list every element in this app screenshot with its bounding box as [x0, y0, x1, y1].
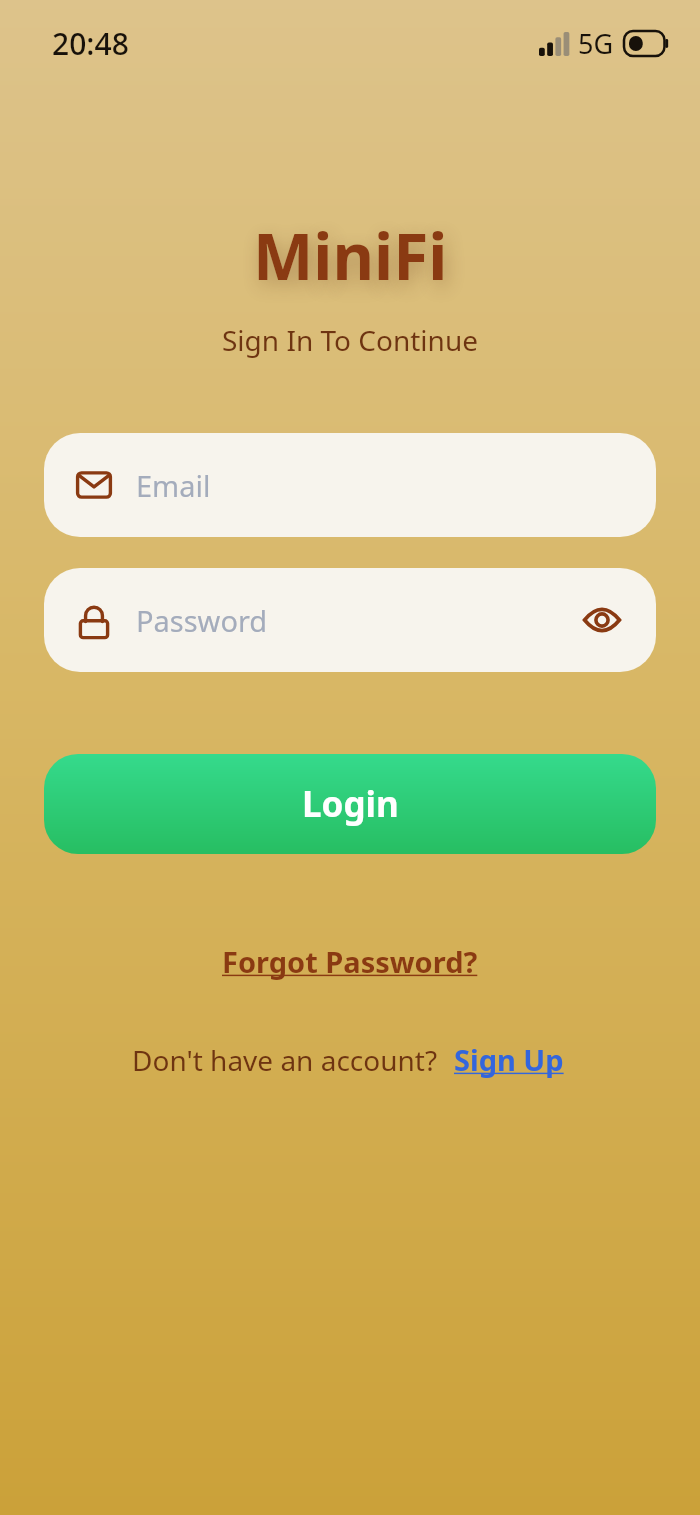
button[interactable]: Password [44, 568, 656, 672]
button[interactable]: Login [44, 754, 656, 854]
staticText: 5G [578, 25, 614, 62]
button[interactable]: Sign Up [450, 1035, 568, 1084]
staticText: Don't have an account? [132, 1041, 438, 1079]
staticText: Email [136, 466, 211, 505]
staticText: Sign In To Continue [222, 321, 478, 359]
staticText: Login [302, 780, 399, 828]
button[interactable]: Forgot Password? [210, 936, 490, 987]
button[interactable]: Show password [578, 596, 626, 644]
staticText: Sign Up [454, 1040, 564, 1079]
staticText: Forgot Password? [222, 942, 478, 981]
button[interactable]: Email [44, 433, 656, 537]
staticText: MiniFi [253, 212, 448, 299]
staticText: 20:48 [52, 23, 129, 64]
staticText: Password [136, 601, 268, 640]
